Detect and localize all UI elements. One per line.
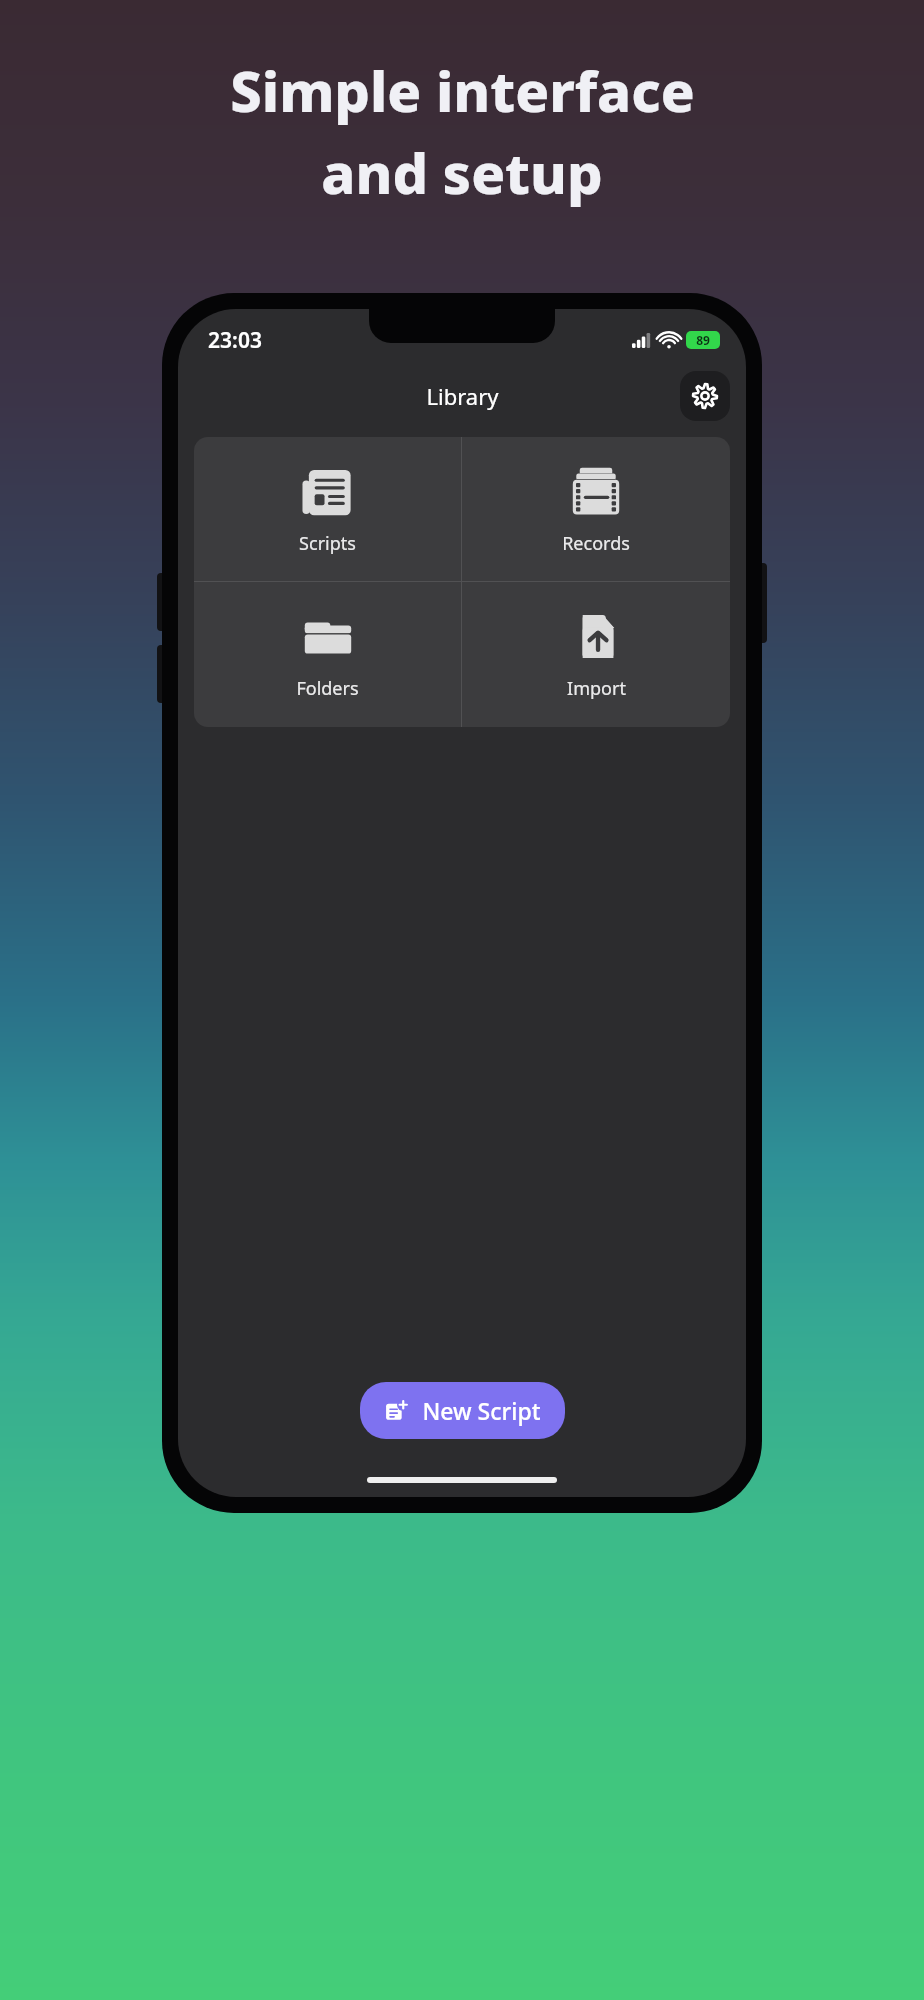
- button[interactable]: Import: [462, 582, 730, 727]
- button[interactable]: Records: [462, 437, 730, 581]
- staticText: and setup: [321, 134, 603, 210]
- button[interactable]: Settings: [680, 371, 730, 421]
- staticText: Simple interface: [230, 52, 695, 128]
- staticText: Library: [426, 381, 499, 411]
- button[interactable]: Scripts: [194, 437, 461, 581]
- staticText: New Script: [422, 1395, 541, 1426]
- staticText: Folders: [296, 676, 359, 701]
- button[interactable]: New Script: [360, 1382, 565, 1439]
- staticText: Records: [562, 531, 630, 556]
- staticText: 23:03: [208, 326, 262, 355]
- staticText: Scripts: [299, 531, 356, 556]
- staticText: Import: [567, 676, 626, 701]
- button[interactable]: Folders: [194, 582, 461, 727]
- staticText: 89: [696, 332, 710, 348]
